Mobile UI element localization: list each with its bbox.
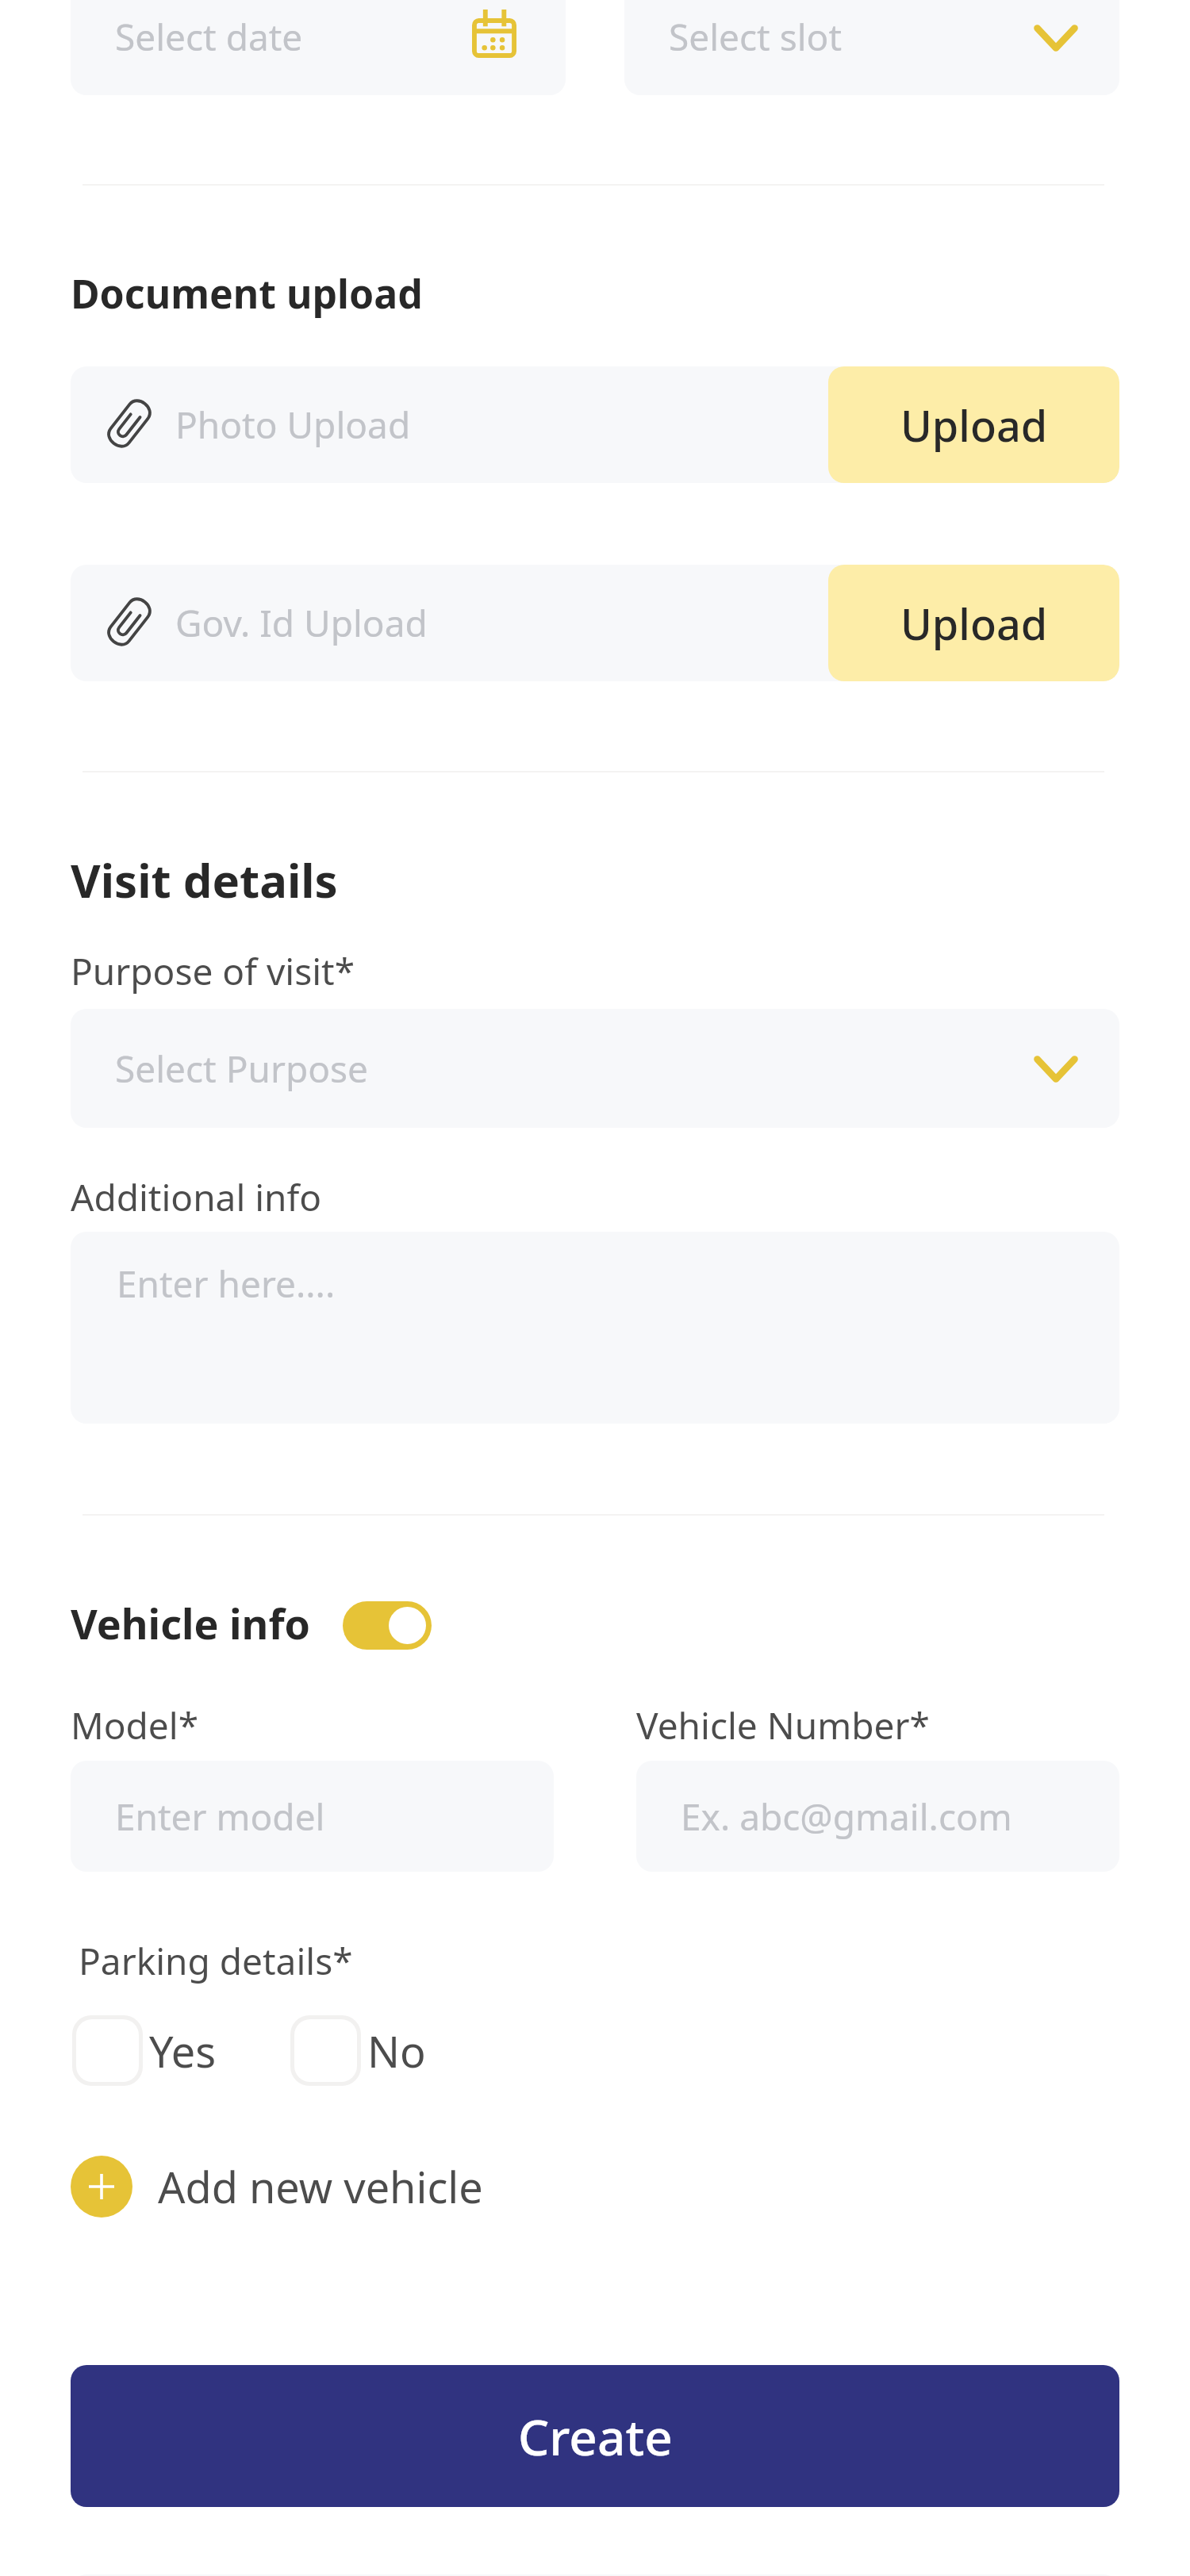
staticText: Vehicle Number* — [636, 1700, 930, 1750]
staticText: Upload — [900, 396, 1048, 454]
button[interactable]: Photo Upload — [71, 366, 1119, 483]
button[interactable]: Add new vehicle — [71, 2156, 483, 2218]
button[interactable]: Select date — [71, 0, 566, 95]
staticText: Upload — [900, 594, 1048, 653]
button[interactable]: Ex. abc@gmail.com — [636, 1761, 1119, 1872]
staticText: Select Purpose — [115, 1044, 369, 1094]
button[interactable]: Toggle vehicle info — [343, 1601, 432, 1650]
staticText: Additional info — [71, 1172, 322, 1222]
button[interactable]: Select slot — [624, 0, 1119, 95]
button[interactable]: Select Purpose — [71, 1009, 1119, 1128]
button[interactable]: Enter model — [71, 1761, 554, 1872]
staticText: Select date — [115, 12, 303, 62]
staticText: Ex. abc@gmail.com — [681, 1792, 1012, 1842]
staticText: Visit details — [71, 849, 338, 911]
staticText: Model* — [71, 1700, 199, 1750]
button[interactable]: Create — [71, 2365, 1119, 2507]
staticText: Purpose of visit* — [71, 946, 355, 996]
staticText: Enter model — [115, 1792, 325, 1842]
button[interactable]: Upload — [828, 565, 1119, 681]
staticText: Yes — [149, 2022, 217, 2080]
staticText: Parking details* — [79, 1936, 353, 1986]
staticText: Gov. Id Upload — [175, 598, 428, 648]
button[interactable]: Yes — [72, 2015, 217, 2086]
button[interactable]: Upload — [828, 366, 1119, 483]
staticText: Add new vehicle — [158, 2157, 483, 2216]
staticText: Enter here.... — [117, 1259, 336, 1309]
button[interactable]: No — [290, 2015, 426, 2086]
staticText: Create — [518, 2403, 673, 2470]
button[interactable]: Gov. Id Upload — [71, 565, 1119, 681]
staticText: Select slot — [669, 12, 842, 62]
staticText: Photo Upload — [175, 400, 411, 450]
staticText: Document upload — [71, 266, 423, 320]
button[interactable]: Enter here.... — [71, 1232, 1119, 1424]
staticText: No — [367, 2022, 426, 2080]
staticText: Vehicle info — [71, 1595, 311, 1651]
